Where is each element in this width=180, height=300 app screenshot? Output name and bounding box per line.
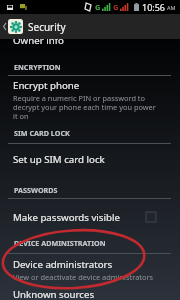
button[interactable] xyxy=(0,30,180,44)
staticText: AM xyxy=(167,4,176,11)
staticText: Set up SIM card lock xyxy=(13,153,105,166)
staticText: Require a numeric PIN or password to dec… xyxy=(13,93,156,121)
staticText: Security xyxy=(28,20,66,34)
staticText: Encrypt phone xyxy=(13,79,80,92)
staticText: 10:56 xyxy=(142,1,166,13)
staticText: Unknown sources xyxy=(13,288,95,300)
staticText: SIM CARD LOCK xyxy=(14,128,70,138)
staticText: G xyxy=(113,2,119,12)
staticText: DEVICE ADMINISTRATION xyxy=(14,238,106,248)
staticText: ENCRYPTION xyxy=(14,62,61,72)
button[interactable] xyxy=(0,76,180,122)
button[interactable] xyxy=(0,199,180,235)
button[interactable]: Navigate up xyxy=(0,19,23,34)
staticText: G xyxy=(95,2,101,12)
button[interactable] xyxy=(0,254,180,286)
staticText: Device administrators xyxy=(13,258,113,271)
staticText: Owner info xyxy=(13,34,64,47)
button[interactable] xyxy=(0,287,180,300)
staticText: Make passwords visible xyxy=(13,211,120,224)
staticText: View or deactivate device administrators xyxy=(13,272,180,282)
staticText: PASSWORDS xyxy=(14,185,58,195)
button[interactable] xyxy=(0,144,180,184)
